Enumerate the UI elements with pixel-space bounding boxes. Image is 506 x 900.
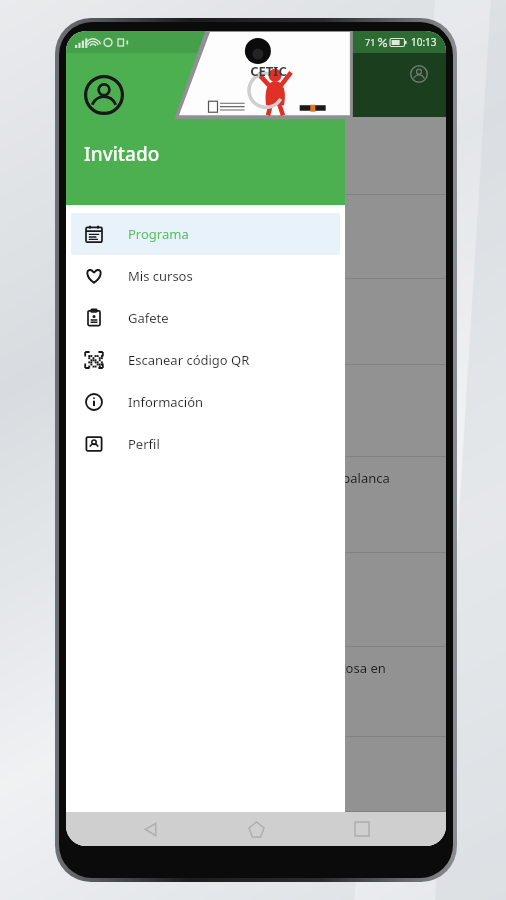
button[interactable]: Conferencia magistral: la innovación com… <box>66 457 446 553</box>
button[interactable]: Taller práctico — transformación digital… <box>66 647 446 737</box>
staticText: Gafete <box>128 309 169 327</box>
button[interactable]: Mis cursos <box>71 255 340 297</box>
button[interactable] <box>66 195 446 279</box>
staticText: Mis cursos <box>128 267 193 285</box>
button[interactable]: Atrás <box>128 812 172 846</box>
staticText: Perfil <box>128 435 160 453</box>
staticText: Información <box>128 393 204 411</box>
button[interactable]: Recientes <box>340 812 384 846</box>
staticText: Programa · noviembre <box>80 94 206 110</box>
button[interactable] <box>66 737 446 812</box>
button[interactable]: Escanear código QR <box>71 339 340 381</box>
staticText: Escanear código QR <box>128 351 250 369</box>
button[interactable]: Gafete <box>71 297 340 339</box>
staticText: 71 <box>365 36 376 48</box>
staticText: Taller práctico — transformación digital… <box>80 659 386 677</box>
staticText: Conferencia magistral: la innovación com… <box>80 469 432 505</box>
button[interactable] <box>66 117 446 195</box>
staticText: CETIC <box>250 62 287 80</box>
button[interactable] <box>66 553 446 647</box>
button[interactable] <box>66 279 446 365</box>
button[interactable]: Información <box>71 381 340 423</box>
button[interactable] <box>66 365 446 457</box>
staticText: Invitado <box>84 141 160 167</box>
button[interactable]: Inicio <box>234 812 278 846</box>
button[interactable]: Cuenta <box>404 59 434 89</box>
staticText: Programa <box>128 225 189 243</box>
button[interactable]: Perfil <box>71 423 340 465</box>
button[interactable]: Invitado <box>66 53 345 205</box>
staticText: 10:13 <box>411 35 437 49</box>
button[interactable]: Programa <box>71 213 340 255</box>
